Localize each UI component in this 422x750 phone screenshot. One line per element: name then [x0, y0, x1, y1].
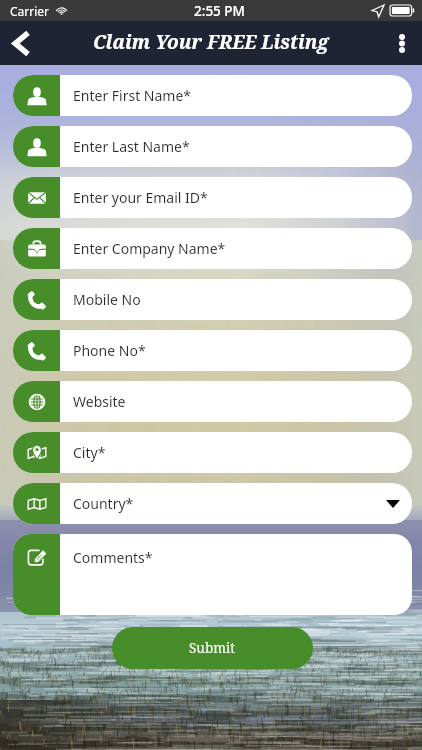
button[interactable]: City* — [13, 432, 412, 473]
button[interactable]: Phone No* — [13, 330, 412, 371]
staticText: Submit — [189, 639, 236, 657]
button[interactable]: More options — [384, 25, 420, 61]
staticText: 2:55 PM — [194, 2, 245, 20]
button[interactable]: Website — [13, 381, 412, 422]
button[interactable]: Enter Last Name* — [13, 126, 412, 167]
button[interactable]: Country* — [13, 483, 412, 524]
staticText: Enter Last Name* — [73, 137, 190, 156]
staticText: Phone No* — [73, 341, 146, 360]
button[interactable]: Comments* — [13, 534, 412, 615]
staticText: Enter First Name* — [73, 86, 192, 105]
staticText: Enter your Email ID* — [73, 188, 208, 207]
staticText: City* — [73, 443, 106, 462]
staticText: Mobile No — [73, 290, 141, 309]
button[interactable]: Mobile No — [13, 279, 412, 320]
staticText: Carrier — [10, 3, 50, 19]
button[interactable]: Back — [2, 25, 38, 61]
button[interactable]: Enter your Email ID* — [13, 177, 412, 218]
staticText: Enter Company Name* — [73, 239, 226, 258]
button[interactable]: Enter Company Name* — [13, 228, 412, 269]
staticText: Claim Your FREE Listing — [93, 29, 329, 55]
button[interactable]: Enter First Name* — [13, 75, 412, 116]
button[interactable]: Submit — [112, 627, 313, 669]
staticText: Comments* — [73, 548, 153, 567]
staticText: Website — [73, 392, 126, 411]
staticText: Country* — [73, 494, 134, 513]
